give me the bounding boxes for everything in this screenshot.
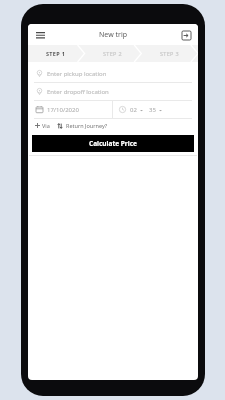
staticText: Enter pickup location (47, 70, 107, 78)
button[interactable]: Enter pickup location (29, 65, 197, 82)
button[interactable]: Via (34, 122, 51, 129)
button[interactable]: STEP 1 (28, 45, 84, 62)
staticText: Enter dropoff location (47, 88, 109, 96)
staticText: New trip (99, 30, 127, 40)
button[interactable]: Enter dropoff location (29, 83, 197, 100)
button[interactable]: Calculate Price (32, 135, 194, 152)
button[interactable]: Return Journey? (57, 122, 108, 129)
staticText: 02 (130, 106, 137, 114)
staticText: 17/10/2020 (47, 106, 79, 114)
staticText: STEP 2 (103, 50, 122, 57)
button[interactable]: 17/10/2020 (29, 101, 112, 118)
button[interactable]: 35 (149, 106, 162, 114)
staticText: STEP 1 (46, 50, 66, 57)
button[interactable]: Menu (32, 27, 48, 43)
staticText: STEP 3 (160, 50, 179, 57)
staticText: 35 (149, 106, 156, 114)
staticText: Via (42, 122, 50, 129)
staticText: Return Journey? (66, 122, 108, 129)
button[interactable]: STEP 3 (141, 45, 198, 62)
staticText: Calculate Price (89, 139, 137, 148)
button[interactable]: STEP 2 (84, 45, 141, 62)
button[interactable]: 02 (130, 106, 143, 114)
button[interactable]: Login (178, 27, 194, 43)
